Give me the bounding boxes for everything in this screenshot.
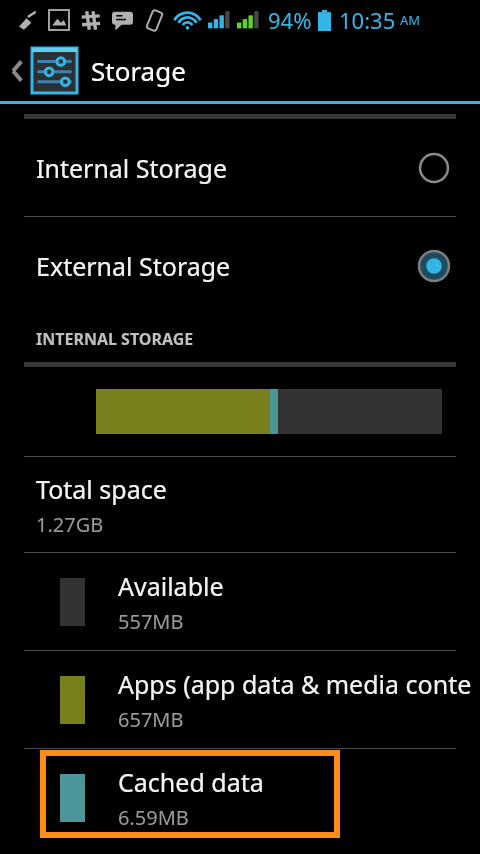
staticText: Cached data [118,765,264,799]
staticText: INTERNAL STORAGE [36,328,194,350]
staticText: Available [118,569,224,603]
staticText: 6.59MB [118,804,189,831]
button[interactable]: Cached data [0,749,480,846]
staticText: 1.27GB [36,511,104,538]
staticText: Apps (app data & media content) [118,667,472,701]
button[interactable]: Apps (app data & media content) [0,651,480,748]
staticText: AM [400,11,421,29]
button[interactable]: External Storage [0,217,480,314]
staticText: Total space [36,472,167,506]
staticText: External Storage [36,249,231,283]
button[interactable]: Internal Storage [0,119,480,216]
staticText: 10:35 [339,5,396,35]
button[interactable]: Available [0,553,480,650]
staticText: 94% [268,5,312,35]
button[interactable]: Total space [0,457,480,552]
staticText: Internal Storage [36,151,228,185]
staticText: 657MB [118,706,184,733]
staticText: 557MB [118,608,184,635]
button[interactable]: Back [0,40,480,101]
staticText: Storage [91,53,186,88]
